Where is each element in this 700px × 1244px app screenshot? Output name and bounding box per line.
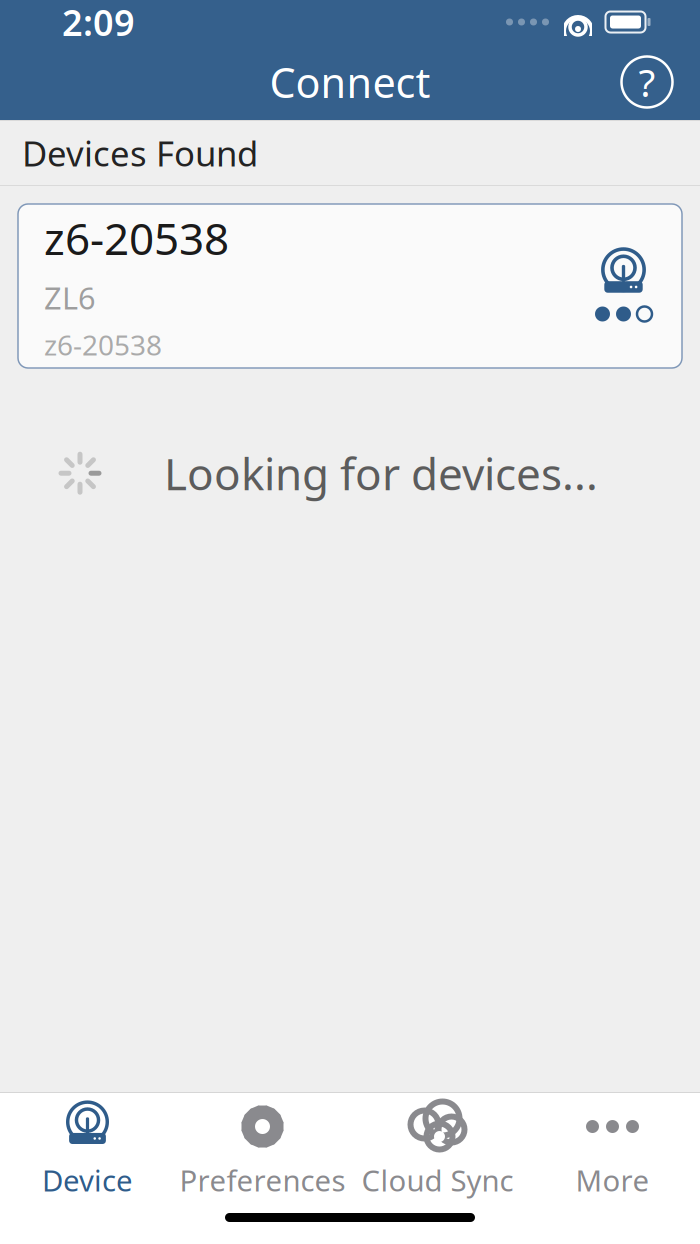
staticText: ? [638, 56, 655, 108]
staticText: ZL6 [44, 277, 96, 318]
button[interactable]: Cloud Sync [350, 1088, 525, 1207]
staticText: Cloud Sync [361, 1160, 513, 1199]
staticText: z6-20538 [44, 209, 229, 267]
staticText: z6-20538 [44, 326, 162, 363]
staticText: Looking for devices... [164, 444, 598, 502]
staticText: More [575, 1160, 649, 1199]
staticText: Connect [269, 55, 430, 109]
staticText: 2:09 [62, 0, 135, 46]
staticText: Devices Found [22, 130, 258, 176]
button[interactable]: z6-20538 [18, 204, 682, 368]
button[interactable]: Preferences [175, 1088, 350, 1207]
button[interactable]: Device [0, 1088, 175, 1207]
staticText: Device [42, 1160, 133, 1199]
button[interactable]: More [525, 1088, 700, 1207]
staticText: Preferences [179, 1160, 345, 1199]
button[interactable]: Help [614, 49, 680, 115]
